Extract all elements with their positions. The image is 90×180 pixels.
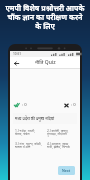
staticText: मध्य प्रदेश की प्रमुख नदियां bbox=[15, 116, 55, 121]
button[interactable]: 1.) नर्मदा, ताप्ती, बेतवा, चंबल bbox=[14, 127, 44, 137]
staticText: नीति Quiz bbox=[35, 59, 56, 66]
button[interactable]: Next bbox=[58, 166, 75, 175]
staticText: 4.) सतलुज, व्यास, रावी, झेलम, चिनाब bbox=[47, 141, 75, 149]
button[interactable]: 4.) सतलुज, व्यास, रावी, झेलम, चिनाब bbox=[46, 140, 76, 150]
staticText: 3.) गंगा, यमुना, कोसी, घाघरा व सोन bbox=[15, 141, 43, 149]
staticText: एमपी विशेष प्रश्नोत्तरी आपके चौंक ज्ञान … bbox=[4, 3, 86, 31]
staticText: 2.) कावेरी, कृष्णा, तुंगभद्रा, गोदावरी bbox=[47, 128, 75, 136]
staticText: 10:51 bbox=[13, 52, 22, 56]
staticText: Next bbox=[62, 168, 71, 173]
staticText: : 0 bbox=[71, 102, 76, 108]
button[interactable]: 2.) कावेरी, कृष्णा, तुंगभद्रा, गोदावरी bbox=[46, 127, 76, 137]
staticText: 1.) नर्मदा, ताप्ती, बेतवा, चंबल bbox=[15, 128, 43, 136]
button[interactable]: Back bbox=[11, 58, 21, 68]
button[interactable]: 3.) गंगा, यमुना, कोसी, घाघरा व सोन bbox=[14, 140, 44, 150]
staticText: : 0 bbox=[22, 102, 27, 108]
